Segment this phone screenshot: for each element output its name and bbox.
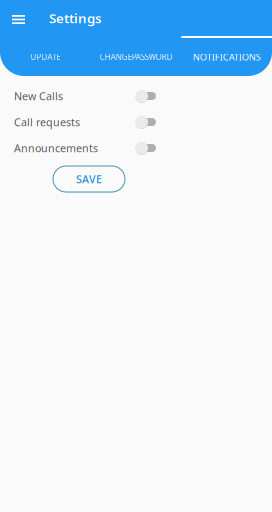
staticText: SAVE [76, 172, 102, 186]
staticText: UPDATE [30, 52, 60, 62]
staticText: Call requests [14, 115, 80, 129]
staticText: CHANGEPASSWORD [99, 52, 172, 62]
staticText: NOTIFICATIONS [193, 51, 261, 63]
button[interactable]: CHANGEPASSWORD [91, 36, 181, 76]
button[interactable]: Menu [0, 0, 37, 37]
button[interactable]: UPDATE [0, 36, 91, 76]
staticText: New Calls [14, 89, 63, 103]
button[interactable]: New Calls [0, 83, 272, 109]
staticText: Announcements [14, 141, 98, 155]
button[interactable]: Call requests [0, 109, 272, 135]
staticText: Settings [49, 9, 102, 27]
button[interactable]: Announcements [0, 135, 272, 161]
button[interactable]: SAVE [53, 166, 125, 192]
button[interactable]: NOTIFICATIONS [181, 36, 272, 76]
